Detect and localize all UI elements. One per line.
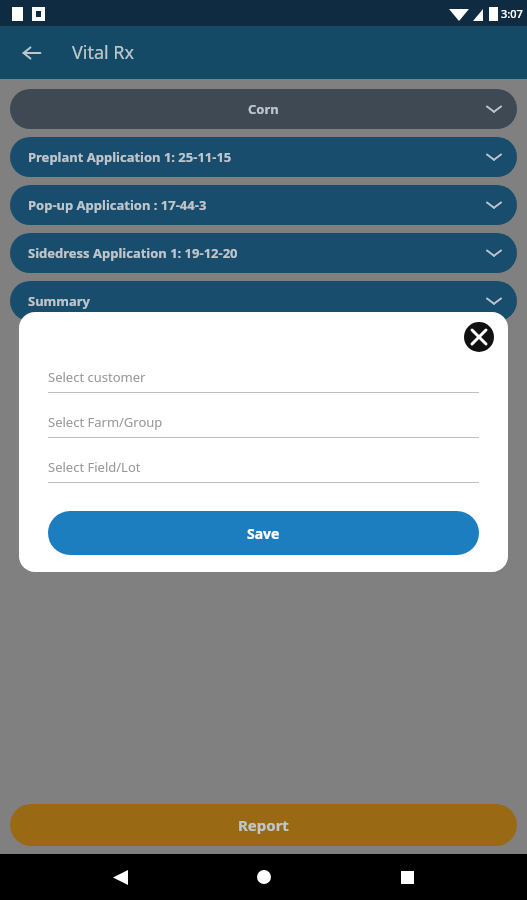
- button[interactable]: Pop-up Application : 17-44-3: [10, 185, 517, 225]
- button[interactable]: Corn: [10, 89, 517, 129]
- button[interactable]: Close: [464, 322, 494, 352]
- button[interactable]: Report: [10, 804, 517, 846]
- button[interactable]: Sidedress Application 1: 19-12-20: [10, 233, 517, 273]
- button[interactable]: Home: [241, 854, 287, 900]
- button[interactable]: Back: [97, 854, 143, 900]
- staticText: Report: [238, 815, 289, 835]
- button[interactable]: Select Field/Lot: [48, 458, 479, 483]
- staticText: Select customer: [48, 368, 146, 386]
- staticText: Select Farm/Group: [48, 413, 163, 431]
- staticText: Preplant Application 1: 25-11-15: [28, 148, 232, 166]
- button[interactable]: Select customer: [48, 368, 479, 393]
- button[interactable]: Summary: [10, 281, 517, 321]
- staticText: Summary: [28, 292, 90, 310]
- button[interactable]: Preplant Application 1: 25-11-15: [10, 137, 517, 177]
- staticText: Pop-up Application : 17-44-3: [28, 196, 207, 214]
- staticText: Vital Rx: [72, 40, 135, 65]
- button[interactable]: Recents: [384, 854, 430, 900]
- button[interactable]: Save: [48, 511, 479, 555]
- button[interactable]: Select Farm/Group: [48, 413, 479, 438]
- staticText: Sidedress Application 1: 19-12-20: [28, 244, 238, 262]
- button[interactable]: Back: [12, 33, 52, 73]
- staticText: 3:07: [501, 6, 523, 21]
- staticText: Corn: [248, 100, 279, 118]
- staticText: Select Field/Lot: [48, 458, 141, 476]
- staticText: Save: [247, 524, 280, 543]
